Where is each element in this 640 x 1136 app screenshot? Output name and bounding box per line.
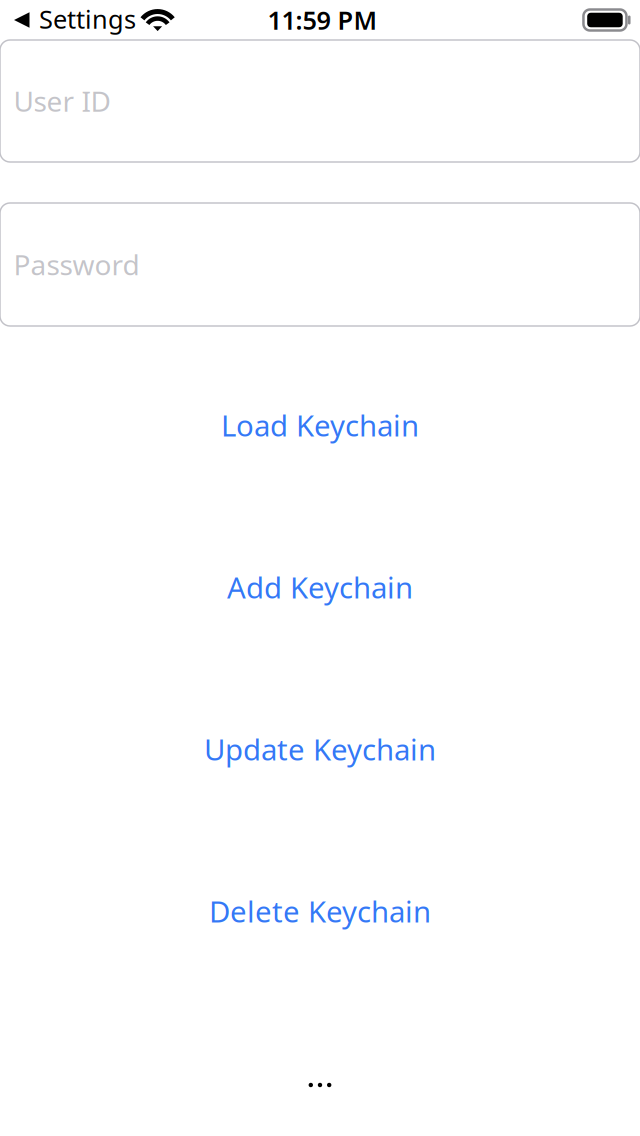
staticText: Update Keychain (204, 729, 436, 768)
staticText: 11:59 PM (267, 3, 377, 37)
button[interactable]: Update Keychain (0, 721, 640, 777)
staticText: Settings (39, 2, 136, 36)
staticText: Load Keychain (221, 405, 419, 444)
button[interactable]: More (288, 1074, 352, 1096)
button[interactable]: User ID (0, 40, 640, 162)
button[interactable]: Password (0, 203, 640, 326)
button[interactable]: Delete Keychain (0, 883, 640, 939)
button[interactable]: Load Keychain (0, 397, 640, 453)
staticText: User ID (13, 82, 110, 120)
staticText: Password (13, 246, 139, 283)
staticText: Add Keychain (227, 567, 413, 606)
button[interactable]: Add Keychain (0, 559, 640, 615)
staticText: Delete Keychain (209, 891, 431, 930)
button[interactable]: Back to Settings (0, 0, 136, 42)
